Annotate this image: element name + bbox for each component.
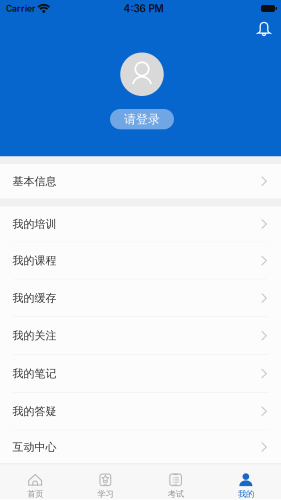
staticText: 互动中心 [12, 440, 56, 454]
staticText: 我的笔记 [12, 367, 56, 380]
button[interactable]: 我的关注 [0, 317, 281, 354]
button[interactable]: 互动中心 [0, 430, 281, 464]
button[interactable]: 我的笔记 [0, 355, 281, 392]
button[interactable]: 我的缓存 [0, 280, 281, 316]
staticText: 首页 [27, 489, 43, 499]
button[interactable]: 我的答疑 [0, 393, 281, 430]
staticText: 我的答疑 [12, 404, 56, 418]
staticText: 请登录 [124, 112, 160, 127]
button[interactable]: 我的培训 [0, 206, 281, 242]
button[interactable]: 请登录 [110, 109, 174, 129]
button[interactable]: 我的课程 [0, 242, 281, 279]
button[interactable]: 我的 [211, 464, 281, 499]
staticText: 考试 [168, 489, 184, 499]
button[interactable]: Notifications [250, 17, 278, 41]
staticText: 基本信息 [12, 174, 56, 188]
button[interactable]: 学习 [70, 464, 140, 499]
staticText: Carrier [6, 3, 35, 14]
staticText: 4:36 PM [123, 2, 163, 15]
staticText: 学习 [97, 489, 113, 499]
staticText: 我的培训 [12, 217, 56, 231]
button[interactable]: 首页 [0, 464, 70, 499]
staticText: 我的缓存 [12, 291, 56, 305]
staticText: 我的 [238, 489, 254, 499]
staticText: 我的关注 [12, 329, 56, 343]
button[interactable]: 基本信息 [0, 164, 281, 198]
staticText: 我的课程 [12, 254, 56, 267]
button[interactable]: 考试 [140, 464, 211, 499]
